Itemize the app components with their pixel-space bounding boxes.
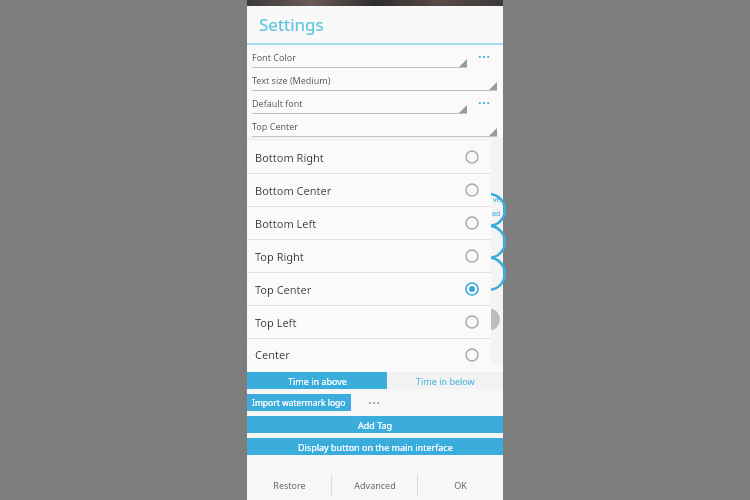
- staticText: Import watermark logo: [252, 397, 346, 409]
- button[interactable]: Add Tag: [247, 416, 503, 433]
- staticText: OK: [454, 479, 467, 491]
- button[interactable]: Top Left: [247, 306, 491, 338]
- staticText: Restore: [273, 479, 306, 491]
- staticText: Text size (Medium): [252, 74, 331, 86]
- button[interactable]: More options: [473, 47, 495, 67]
- button[interactable]: Bottom Left: [247, 207, 491, 239]
- staticText: Time in above: [288, 375, 347, 387]
- staticText: Display button on the main interface: [298, 441, 453, 453]
- button[interactable]: Display button on the main interface: [247, 438, 503, 455]
- button[interactable]: Bottom Right: [247, 141, 491, 173]
- staticText: Settings: [259, 13, 324, 36]
- staticText: Bottom Right: [255, 150, 324, 165]
- staticText: Time in below: [416, 375, 475, 387]
- staticText: Add Tag: [358, 419, 393, 431]
- button[interactable]: Import watermark logo: [247, 394, 351, 411]
- button[interactable]: Top Center: [247, 114, 503, 137]
- staticText: Advanced: [354, 479, 396, 491]
- button[interactable]: More watermark options: [363, 395, 385, 411]
- staticText: Font Color: [252, 51, 296, 63]
- staticText: ad: [492, 209, 501, 219]
- button[interactable]: Restore: [247, 470, 331, 500]
- button[interactable]: More options: [473, 93, 495, 113]
- button[interactable]: Center: [247, 339, 491, 370]
- staticText: Top Center: [255, 282, 312, 297]
- button[interactable]: Bottom Center: [247, 174, 491, 206]
- button[interactable]: Time in above: [247, 372, 387, 389]
- staticText: Top Right: [255, 249, 304, 264]
- button[interactable]: OK: [418, 470, 503, 500]
- staticText: Top Center: [252, 120, 299, 132]
- button[interactable]: Default font: [247, 91, 503, 114]
- button[interactable]: Font Color: [247, 45, 503, 68]
- button[interactable]: Time in below: [387, 372, 503, 389]
- button[interactable]: Top Right: [247, 240, 491, 272]
- button[interactable]: Advanced: [332, 470, 417, 500]
- staticText: Center: [255, 347, 290, 362]
- button[interactable]: Top Center: [247, 273, 491, 305]
- button[interactable]: Text size (Medium): [247, 68, 503, 91]
- staticText: ve: [493, 195, 501, 205]
- staticText: Bottom Left: [255, 216, 317, 231]
- staticText: Default font: [252, 97, 303, 109]
- staticText: Top Left: [255, 315, 297, 330]
- staticText: Bottom Center: [255, 183, 332, 198]
